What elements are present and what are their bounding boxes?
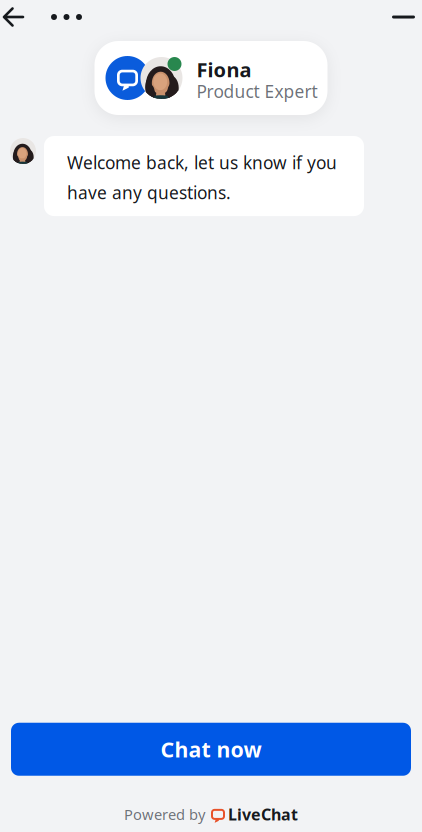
staticText: have any questions.	[67, 181, 231, 204]
button[interactable]: Back	[0, 0, 33, 33]
staticText: Product Expert	[196, 80, 317, 103]
button[interactable]: Minimize	[380, 3, 422, 30]
staticText: Chat now	[160, 735, 261, 763]
button[interactable]: Chat now	[11, 723, 411, 776]
button[interactable]: More options	[33, 2, 92, 32]
staticText: LiveChat	[228, 804, 298, 825]
staticText: Powered by	[124, 805, 205, 824]
staticText: Fiona	[196, 56, 251, 83]
staticText: Welcome back, let us know if you	[67, 151, 337, 174]
